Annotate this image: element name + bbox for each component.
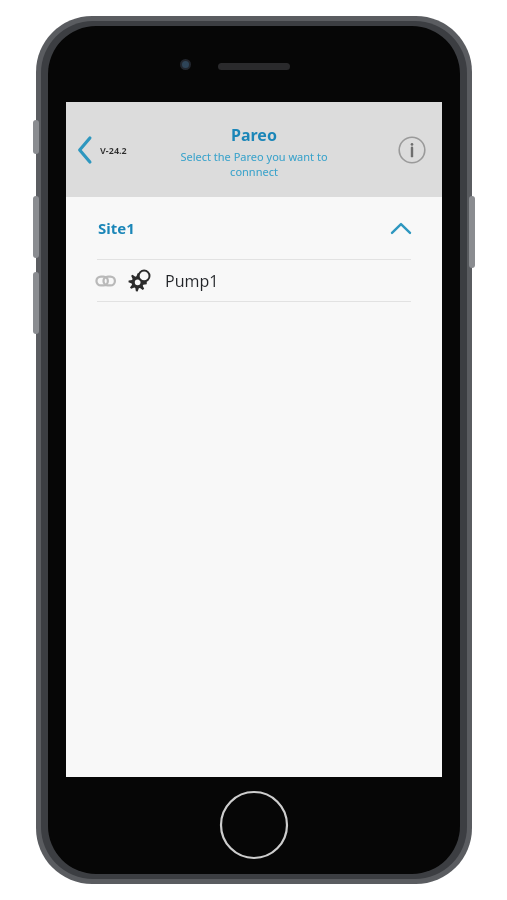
staticText: Pump1 — [165, 270, 219, 292]
other: Settings — [128, 269, 151, 292]
other: Collapse — [392, 223, 410, 234]
button[interactable]: Information — [396, 134, 428, 166]
button[interactable]: Linked — [66, 260, 442, 301]
other: Linked — [96, 273, 118, 289]
button[interactable]: Back — [72, 130, 133, 170]
staticText: Select the Pareo you want to connnect — [159, 149, 349, 179]
staticText: Site1 — [98, 218, 135, 238]
staticText: V-24.2 — [100, 144, 127, 156]
other: Home — [219, 790, 289, 860]
button[interactable]: Site1 — [66, 197, 442, 259]
staticText: Pareo — [231, 124, 277, 146]
